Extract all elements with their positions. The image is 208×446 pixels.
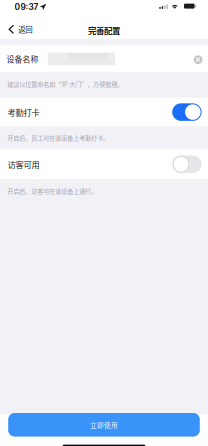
button[interactable]: 返回 <box>4 20 36 39</box>
staticText: 设备名称 <box>6 53 38 65</box>
staticText: 开启后，员工可在该设备上考勤打卡。 <box>7 133 109 142</box>
button[interactable]: Clear device name <box>191 52 206 67</box>
button[interactable]: 考勤打卡 <box>0 98 208 126</box>
button[interactable]: 访客可用 <box>0 149 208 179</box>
staticText: 完善配置 <box>88 24 120 37</box>
staticText: 开启后，访客可在该设备上通行。 <box>7 186 97 195</box>
button[interactable]: 立即使用 <box>8 413 200 437</box>
staticText: 访客可用 <box>7 158 39 170</box>
staticText: 09:37 <box>14 2 38 12</box>
staticText: 考勤打卡 <box>7 106 39 118</box>
staticText: 建议以位置命名如“3F-大门”，方便管理。 <box>7 79 123 88</box>
staticText: 返回 <box>18 24 32 35</box>
staticText: 立即使用 <box>90 420 118 430</box>
